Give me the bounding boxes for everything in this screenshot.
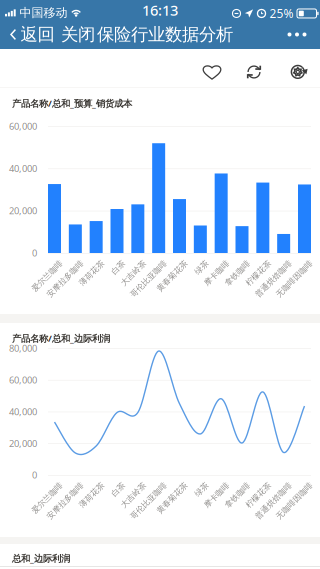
staticText: 产品名称/总和_预算_销货成本 xyxy=(12,97,132,109)
staticText: 安摩拉多咖啡 xyxy=(31,258,79,268)
staticText: 返回 xyxy=(20,24,54,45)
staticText: 产品名称/总和_边际利润 xyxy=(12,332,110,344)
staticText: 绿茶 xyxy=(188,258,204,268)
staticText: 无咖啡因咖啡 xyxy=(260,258,308,268)
staticText: 40,000 xyxy=(9,405,37,418)
staticText: 拿铁咖啡 xyxy=(214,480,246,490)
staticText: 0 xyxy=(32,247,37,259)
button[interactable]: 返回 xyxy=(10,20,60,49)
staticText: 哥伦比亚咖啡 xyxy=(115,258,163,268)
staticText: 拿铁咖啡 xyxy=(214,258,246,268)
staticText: 16:13 xyxy=(142,0,178,20)
staticText: 黄春菊花茶 xyxy=(143,480,183,490)
staticText: 25% xyxy=(269,5,293,21)
staticText: 普通烘焙咖啡 xyxy=(240,258,288,268)
staticText: 摩卡咖啡 xyxy=(193,258,225,268)
staticText: 薄荷花茶 xyxy=(68,258,100,268)
staticText: 中国移动 xyxy=(20,5,68,20)
staticText: 普通烘焙咖啡 xyxy=(240,480,288,490)
button[interactable]: 刷新 xyxy=(237,55,271,89)
button[interactable]: 设置 xyxy=(284,55,318,89)
staticText: 20,000 xyxy=(9,437,37,449)
staticText: 保险行业数据分析 xyxy=(97,24,233,45)
staticText: 爱尔兰咖啡 xyxy=(18,258,58,268)
staticText: 绿茶 xyxy=(188,480,204,490)
staticText: 柠檬花茶 xyxy=(235,480,267,490)
button[interactable]: 收藏 xyxy=(195,55,229,89)
staticText: 关闭 xyxy=(61,24,95,45)
staticText: 总和_边际利润 xyxy=(12,552,70,564)
staticText: 0 xyxy=(32,469,37,481)
staticText: 白茶 xyxy=(105,258,121,268)
staticText: 大吉岭茶 xyxy=(110,258,142,268)
staticText: 安摩拉多咖啡 xyxy=(31,480,79,490)
staticText: 薄荷花茶 xyxy=(68,480,100,490)
staticText: 哥伦比亚咖啡 xyxy=(115,480,163,490)
staticText: 摩卡咖啡 xyxy=(193,480,225,490)
staticText: 40,000 xyxy=(9,162,37,175)
staticText: 80,000 xyxy=(9,342,37,354)
staticText: 爱尔兰咖啡 xyxy=(18,480,58,490)
button[interactable]: 关闭 xyxy=(61,20,101,49)
staticText: 60,000 xyxy=(9,120,37,132)
staticText: 大吉岭茶 xyxy=(110,480,142,490)
button[interactable]: 更多 xyxy=(278,20,316,49)
staticText: 60,000 xyxy=(9,374,37,386)
staticText: 无咖啡因咖啡 xyxy=(260,480,308,490)
staticText: 黄春菊花茶 xyxy=(143,258,183,268)
staticText: 柠檬花茶 xyxy=(235,258,267,268)
staticText: 20,000 xyxy=(9,204,37,217)
staticText: 白茶 xyxy=(105,480,121,490)
